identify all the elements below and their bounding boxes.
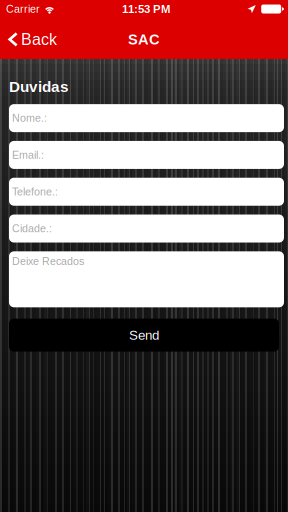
staticText: Back [21, 31, 57, 48]
button[interactable]: Send [9, 319, 279, 352]
staticText: Email.: [12, 149, 44, 161]
staticText: Cidade.: [12, 223, 52, 234]
staticText: Send [129, 328, 159, 343]
button[interactable]: Telefone.: [9, 178, 284, 206]
button[interactable]: Deixe Recados [9, 251, 284, 307]
staticText: Nome.: [12, 112, 47, 124]
staticText: 11:53 PM [122, 3, 170, 15]
staticText: SAC [128, 31, 160, 48]
staticText: Deixe Recados [12, 255, 84, 267]
button[interactable]: Email.: [9, 141, 284, 169]
button[interactable]: Cidade.: [9, 214, 284, 242]
staticText: Carrier [6, 3, 40, 15]
staticText: Duvidas [9, 78, 69, 95]
button[interactable]: Back [0, 18, 65, 59]
staticText: Telefone.: [12, 186, 58, 198]
button[interactable]: Nome.: [9, 104, 284, 132]
